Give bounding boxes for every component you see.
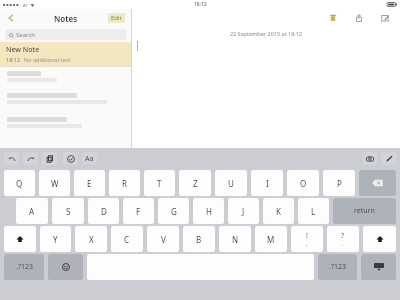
button[interactable]: T	[144, 170, 175, 196]
staticText: E	[87, 178, 92, 189]
staticText: N	[232, 234, 239, 245]
staticText: !	[306, 231, 308, 241]
staticText: J	[242, 206, 245, 217]
button[interactable]: L	[298, 198, 329, 224]
button[interactable]: Draw	[381, 152, 396, 165]
staticText: W	[51, 178, 59, 189]
staticText: R	[122, 178, 127, 189]
button[interactable]: W	[39, 170, 70, 196]
button[interactable]: X	[75, 226, 107, 252]
button[interactable]: return	[333, 198, 396, 224]
staticText: Z	[193, 178, 198, 189]
staticText: I	[266, 178, 269, 189]
button[interactable]: Delete	[326, 11, 340, 25]
staticText: .	[342, 241, 344, 248]
button[interactable]: .?123	[318, 254, 357, 280]
button[interactable]	[0, 113, 131, 137]
button[interactable]: Compose	[378, 11, 392, 25]
button[interactable]: !	[291, 226, 323, 252]
button[interactable]: Search	[5, 29, 126, 40]
button[interactable]: Paste	[42, 152, 57, 165]
button[interactable]: New Note	[0, 42, 131, 66]
button[interactable]: K	[263, 198, 294, 224]
staticText: S	[66, 206, 71, 217]
button[interactable]: Camera	[362, 152, 377, 165]
staticText: Q	[16, 178, 23, 189]
staticText: Y	[53, 234, 58, 245]
button[interactable]: B	[183, 226, 215, 252]
button[interactable]: Shift	[4, 226, 36, 252]
button[interactable]: H	[193, 198, 224, 224]
button[interactable]: Edit	[108, 13, 125, 23]
button[interactable]	[0, 67, 131, 89]
button[interactable]: Share	[352, 11, 366, 25]
button[interactable]: N	[219, 226, 251, 252]
button[interactable]: Emoji	[48, 254, 83, 280]
staticText: ,	[306, 241, 308, 248]
staticText: 22 September 2015 at 18:12	[132, 30, 400, 37]
button[interactable]: I	[251, 170, 283, 196]
staticText: A	[29, 206, 35, 217]
button[interactable]: S	[52, 198, 84, 224]
button[interactable]: Backspace	[359, 170, 396, 196]
staticText: Notes	[54, 13, 78, 24]
staticText: H	[206, 206, 212, 217]
staticText: T	[157, 178, 162, 189]
button[interactable]	[0, 89, 131, 113]
button[interactable]: Shift	[363, 226, 396, 252]
staticText: 18:12	[6, 56, 21, 63]
staticText: Search	[16, 31, 35, 39]
button[interactable]: Hide keyboard	[361, 254, 396, 280]
button[interactable]: ?	[327, 226, 359, 252]
staticText: return	[354, 206, 375, 216]
button[interactable]: G	[158, 198, 189, 224]
staticText: D	[101, 206, 107, 217]
button[interactable]: R	[109, 170, 140, 196]
staticText: P	[337, 178, 342, 189]
button[interactable]: .?123	[4, 254, 44, 280]
staticText: X	[89, 234, 94, 245]
button[interactable]: Undo	[4, 152, 19, 165]
button[interactable]: P	[323, 170, 355, 196]
staticText: .?123	[329, 262, 346, 272]
button[interactable]: D	[88, 198, 119, 224]
staticText: New Note	[6, 45, 40, 55]
staticText: B	[196, 234, 202, 245]
staticText: C	[124, 234, 130, 245]
staticText: G	[171, 206, 177, 217]
staticText: F	[136, 206, 141, 217]
button[interactable]: Checklist	[63, 152, 78, 165]
staticText: Aa	[85, 154, 94, 164]
button[interactable]: V	[147, 226, 179, 252]
staticText: No additional text	[24, 56, 71, 63]
staticText: L	[311, 206, 316, 217]
button[interactable]: Y	[40, 226, 71, 252]
staticText: K	[276, 206, 281, 217]
button[interactable]: Format	[82, 152, 97, 165]
button[interactable]: Z	[179, 170, 211, 196]
staticText: Edit	[111, 14, 122, 22]
staticText: O	[300, 178, 307, 189]
button[interactable]: M	[255, 226, 287, 252]
button[interactable]: O	[287, 170, 319, 196]
button[interactable]: E	[74, 170, 105, 196]
button[interactable]: C	[111, 226, 143, 252]
staticText: 18:12	[194, 1, 207, 8]
button[interactable]: A	[16, 198, 48, 224]
button[interactable]: F	[123, 198, 154, 224]
staticText: U	[228, 178, 234, 189]
staticText: ?	[341, 231, 345, 241]
button[interactable]: Q	[4, 170, 35, 196]
button[interactable]: Redo	[23, 152, 38, 165]
button[interactable]: Back	[4, 11, 18, 25]
staticText: AT	[23, 3, 28, 8]
staticText: V	[161, 234, 166, 245]
staticText: .?123	[16, 262, 33, 272]
staticText: M	[267, 234, 275, 245]
button[interactable]: J	[228, 198, 259, 224]
button[interactable]: U	[215, 170, 247, 196]
